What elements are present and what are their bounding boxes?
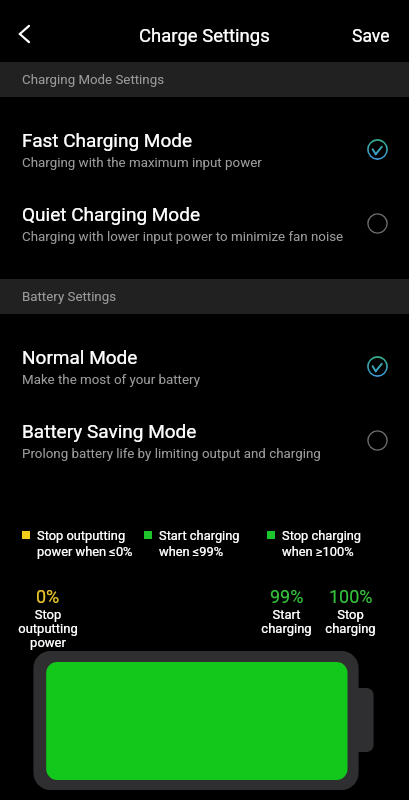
staticText: Quiet Charging Mode <box>22 203 200 225</box>
staticText: Fast Charging Mode <box>22 129 193 151</box>
button[interactable]: Quiet Charging Mode <box>0 171 409 245</box>
staticText: power when ≤0% <box>37 544 133 559</box>
button[interactable]: Battery Saving Mode <box>0 388 409 462</box>
staticText: Charging Mode Settings <box>22 72 164 88</box>
staticText: Start charging <box>159 528 240 543</box>
staticText: Stop charging <box>282 528 362 543</box>
staticText: Stop outputting power <box>18 607 78 650</box>
staticText: Stop outputting <box>37 528 126 543</box>
staticText: Battery Saving Mode <box>22 420 197 442</box>
staticText: Stop charging <box>325 607 376 636</box>
staticText: Make the most of your battery <box>22 372 200 388</box>
staticText: 100% <box>329 586 373 607</box>
staticText: Prolong battery life by limiting output … <box>22 446 321 462</box>
staticText: Charging with the maximum input power <box>22 155 262 171</box>
staticText: Normal Mode <box>22 346 138 368</box>
staticText: Start charging <box>261 607 312 636</box>
staticText: Battery Settings <box>22 289 117 305</box>
staticText: when ≥100% <box>282 544 354 559</box>
button[interactable]: Fast Charging Mode <box>0 97 409 171</box>
staticText: Charge Settings <box>139 25 270 47</box>
staticText: 0% <box>36 586 60 607</box>
button[interactable]: Save <box>333 18 409 55</box>
staticText: 99% <box>270 586 304 607</box>
staticText: Save <box>352 26 390 47</box>
button[interactable]: Back <box>1 12 45 56</box>
staticText: when ≤99% <box>159 544 224 559</box>
staticText: Charging with lower input power to minim… <box>22 229 344 245</box>
button[interactable]: Normal Mode <box>0 314 409 388</box>
